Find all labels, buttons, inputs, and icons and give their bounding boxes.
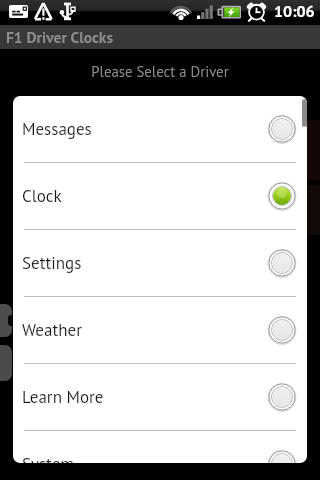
staticText: Learn More — [22, 386, 104, 408]
staticText: F1 Driver Clocks — [6, 27, 113, 47]
button[interactable]: Weather — [13, 297, 307, 363]
staticText: Messages — [22, 118, 92, 140]
button[interactable]: Clock — [13, 163, 307, 229]
staticText: Please Select a Driver — [0, 62, 320, 81]
staticText: Settings — [22, 252, 82, 274]
staticText: Weather — [22, 319, 82, 341]
staticText: System — [22, 453, 75, 463]
button[interactable]: Messages — [13, 96, 307, 162]
staticText: Clock — [22, 185, 62, 207]
button[interactable]: Learn More — [13, 364, 307, 430]
button[interactable]: System — [13, 431, 307, 463]
button[interactable]: Settings — [13, 230, 307, 296]
staticText: 10:06 — [274, 1, 315, 22]
